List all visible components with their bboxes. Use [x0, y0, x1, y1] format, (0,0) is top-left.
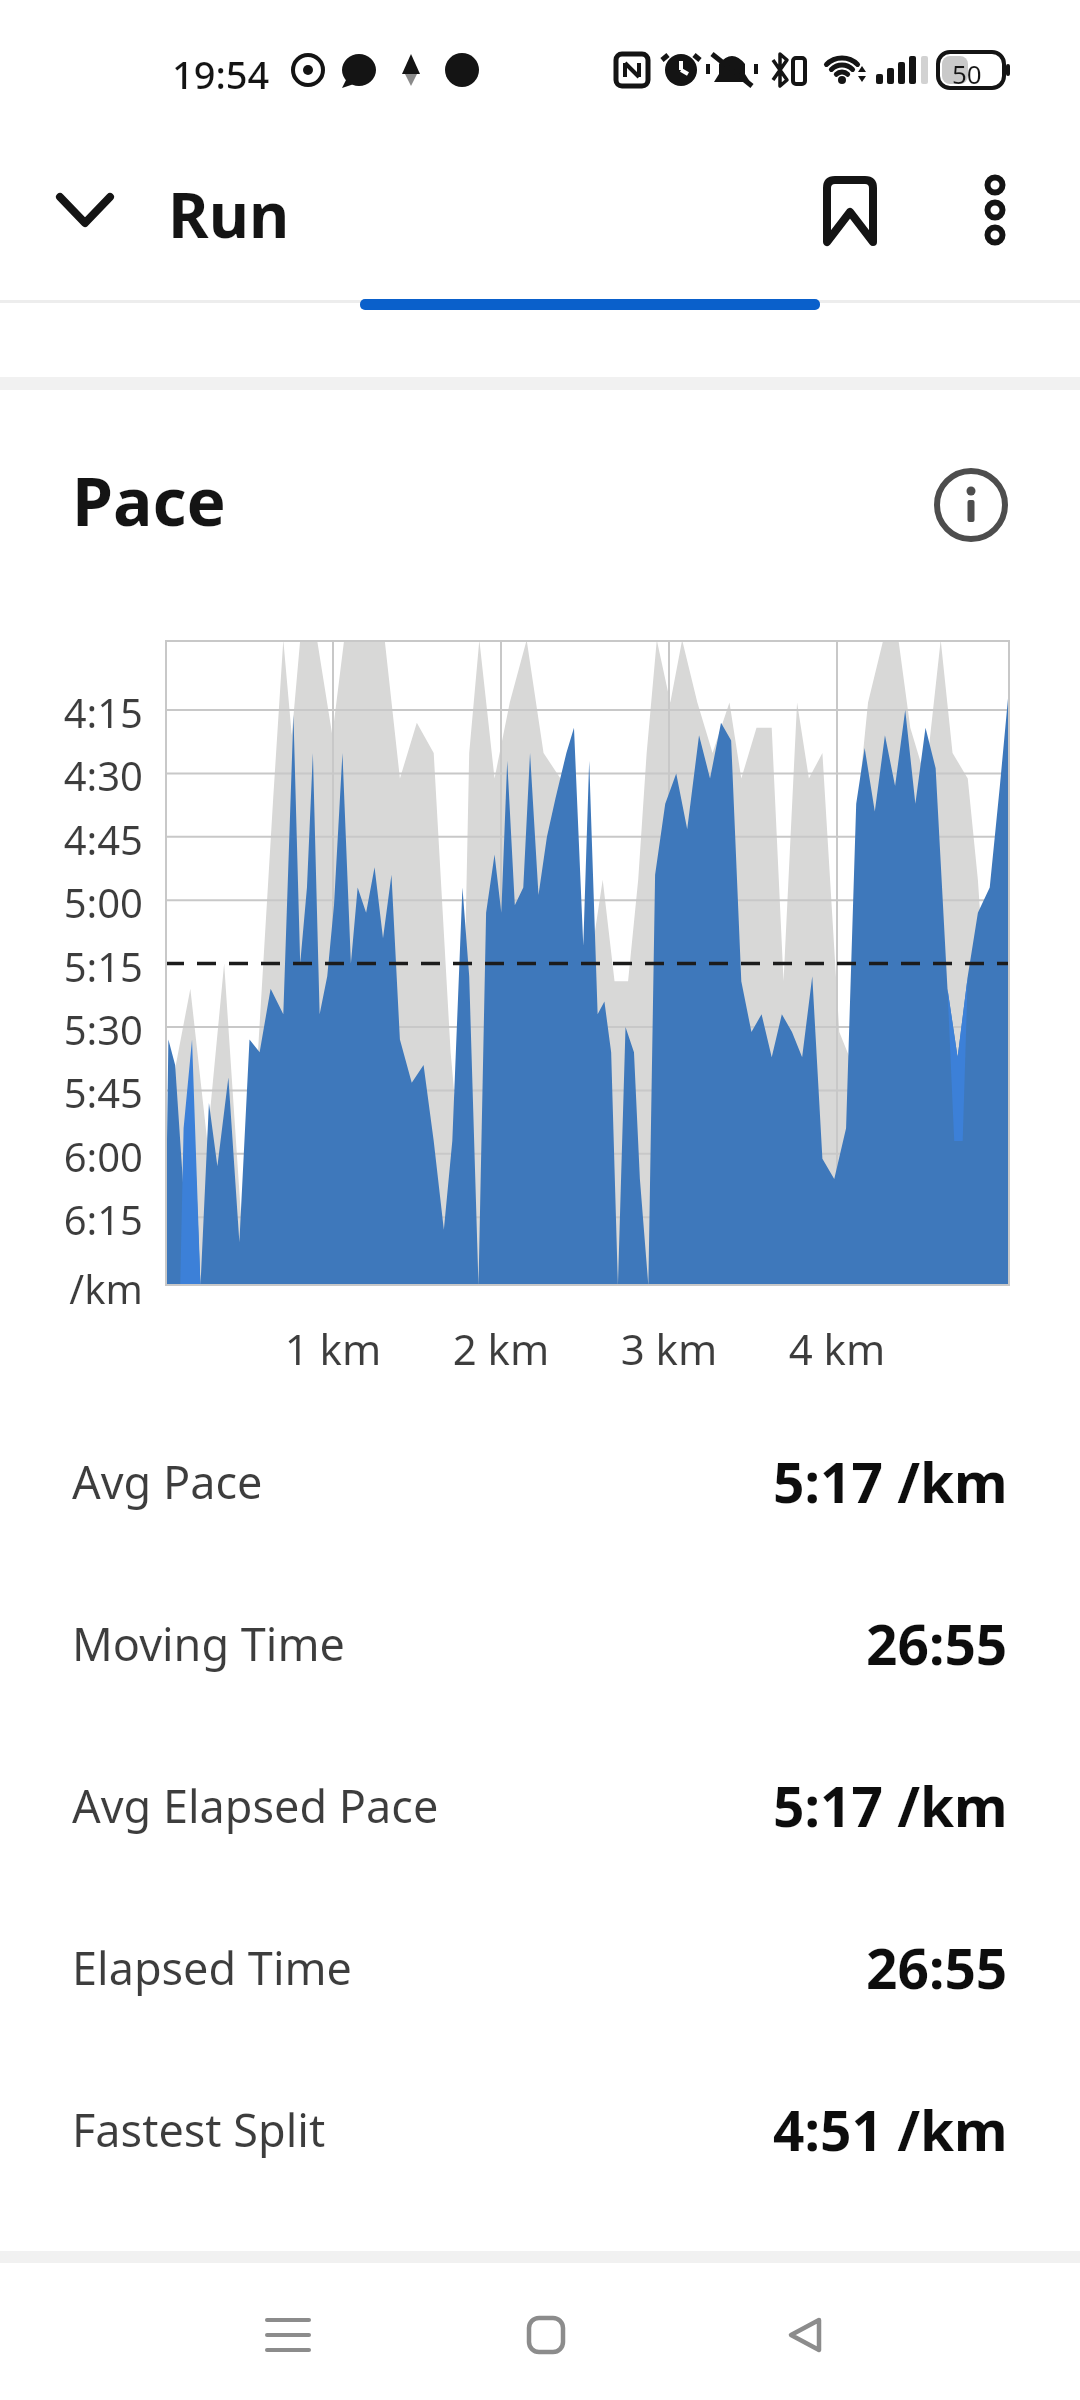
- staticText: 6:00: [0, 1129, 143, 1183]
- staticText: Run: [168, 172, 290, 256]
- staticText: 5:15: [0, 939, 143, 993]
- button[interactable]: [238, 2285, 338, 2385]
- staticText: 5:30: [0, 1002, 143, 1056]
- staticText: Fastest Split: [72, 2099, 326, 2160]
- button[interactable]: Avg Elapsed Pace: [72, 1760, 1008, 1850]
- button[interactable]: Avg Pace: [72, 1436, 1008, 1526]
- button[interactable]: Elapsed Time: [72, 1922, 1008, 2012]
- button[interactable]: [931, 465, 1011, 545]
- staticText: 5:17 /km: [773, 1444, 1008, 1519]
- button[interactable]: [40, 170, 130, 250]
- button[interactable]: [800, 160, 900, 260]
- staticText: Moving Time: [72, 1613, 345, 1674]
- staticText: 1 km: [258, 1320, 408, 1377]
- staticText: 5:45: [0, 1065, 143, 1119]
- staticText: 5:17 /km: [773, 1768, 1008, 1843]
- staticText: Elapsed Time: [72, 1937, 352, 1998]
- staticText: Pace: [72, 455, 226, 545]
- staticText: 3 km: [594, 1320, 744, 1377]
- staticText: 2 km: [426, 1320, 576, 1377]
- staticText: 4:30: [0, 748, 143, 802]
- staticText: 26:55: [866, 1930, 1008, 2005]
- staticText: 4 km: [762, 1320, 912, 1377]
- staticText: 50: [952, 56, 982, 91]
- staticText: 4:51 /km: [773, 2092, 1008, 2167]
- button[interactable]: Fastest Split: [72, 2084, 1008, 2174]
- button[interactable]: [955, 160, 1035, 260]
- staticText: 5:00: [0, 875, 143, 929]
- staticText: /km: [0, 1261, 143, 1315]
- staticText: Avg Elapsed Pace: [72, 1775, 439, 1836]
- staticText: Avg Pace: [72, 1451, 263, 1512]
- staticText: 26:55: [866, 1606, 1008, 1681]
- button[interactable]: Moving Time: [72, 1598, 1008, 1688]
- button[interactable]: [755, 2285, 855, 2385]
- staticText: 4:15: [0, 685, 143, 739]
- staticText: 4:45: [0, 812, 143, 866]
- button[interactable]: [496, 2285, 596, 2385]
- staticText: 6:15: [0, 1192, 143, 1246]
- staticText: 19:54: [172, 48, 270, 100]
